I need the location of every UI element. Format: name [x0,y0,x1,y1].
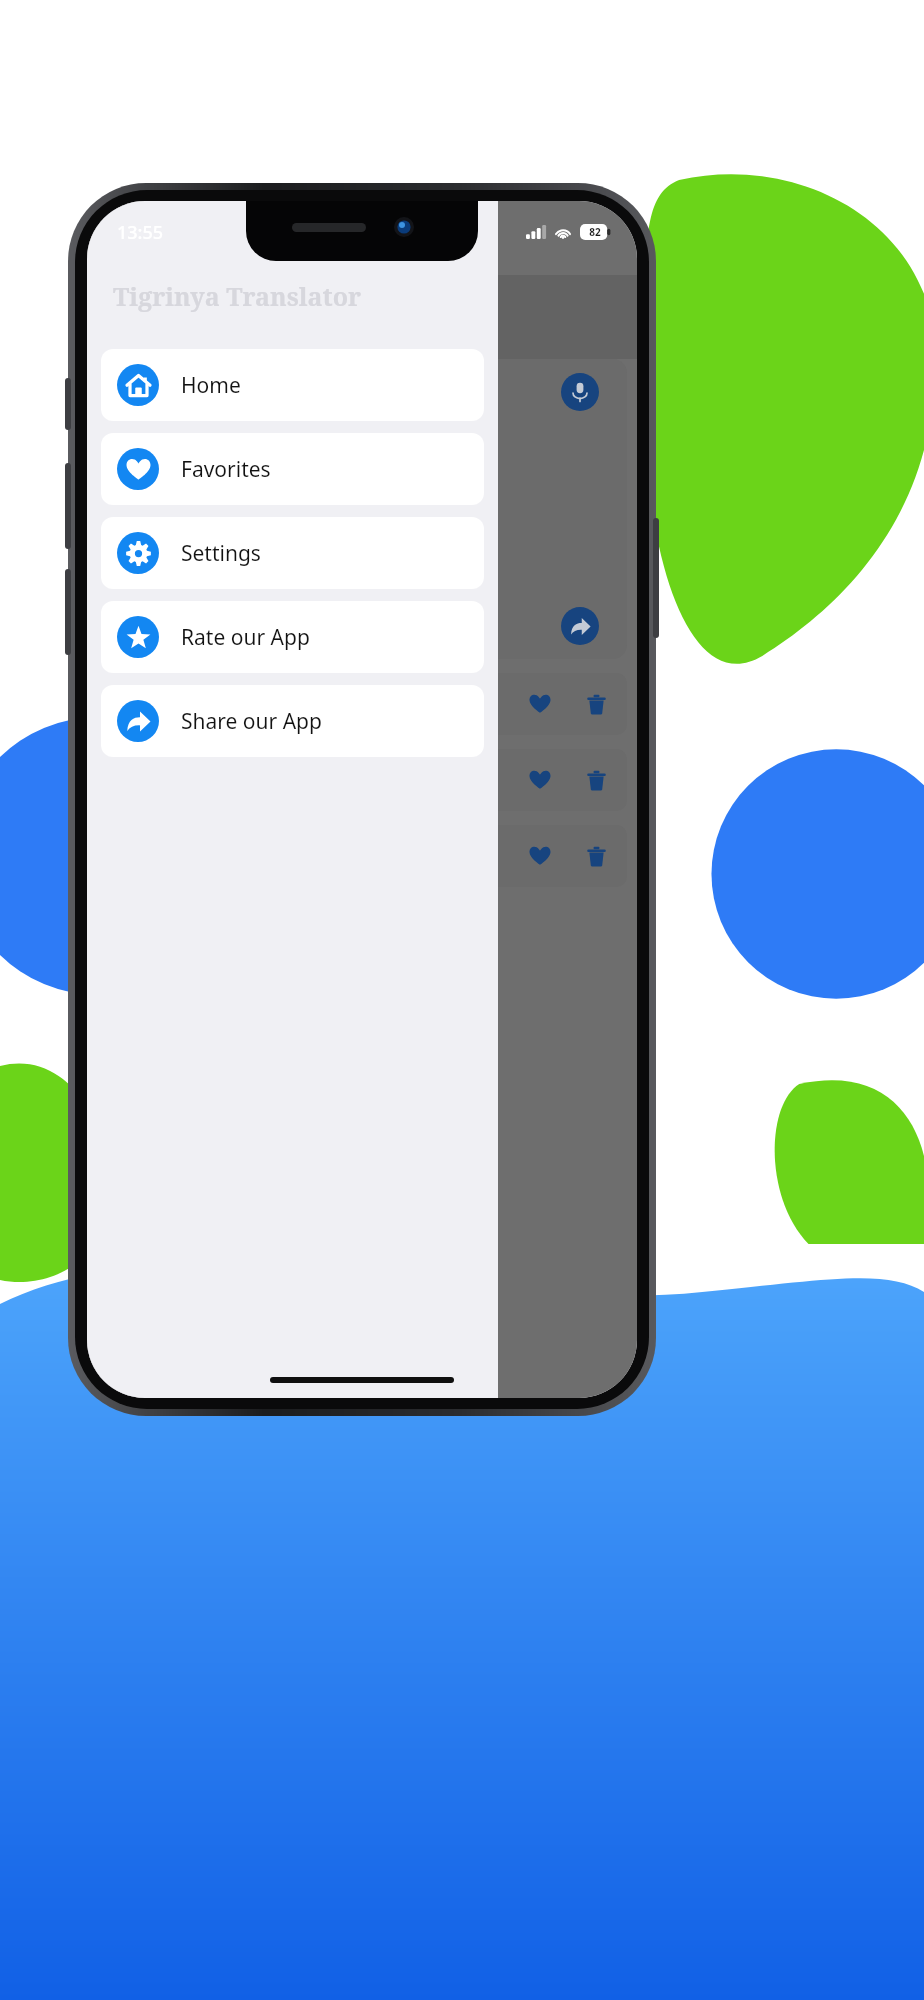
button[interactable]: Favorites [101,433,484,505]
button[interactable]: Delete [581,765,611,795]
staticText: 82 [589,225,601,239]
button[interactable]: Favorite [525,689,555,719]
button[interactable]: Share our App [101,685,484,757]
button[interactable]: Delete [581,689,611,719]
button[interactable]: Settings [101,517,484,589]
button[interactable]: Favorite [97,673,627,735]
staticText: Rate our App [181,623,310,652]
button[interactable]: Favorite [97,825,627,887]
button[interactable]: Rate our App [101,601,484,673]
staticText: Share our App [181,707,322,736]
staticText: Favorites [181,455,271,484]
staticText: 13:55 [117,220,164,245]
staticText: Home [181,371,241,400]
staticText: Tigrinya [307,299,417,336]
button[interactable]: Favorite [525,765,555,795]
button[interactable]: Share translation [561,607,599,645]
button[interactable]: Delete [581,841,611,871]
button[interactable]: Favorite [97,749,627,811]
button[interactable]: Microphone [561,373,599,411]
staticText: Settings [181,539,261,568]
button[interactable]: Favorite [525,841,555,871]
button[interactable]: Home [101,349,484,421]
staticText: Tigrinya Translator [113,279,498,313]
